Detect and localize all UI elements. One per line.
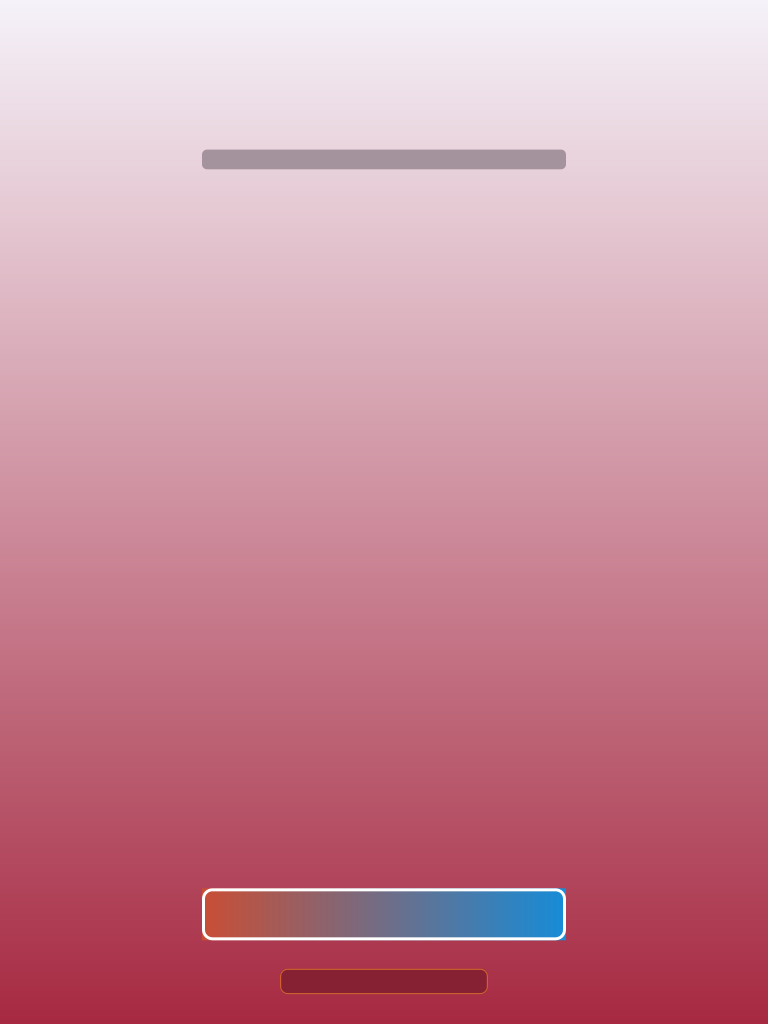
button[interactable]: Secondary action: [280, 969, 488, 994]
button[interactable]: Continue: [202, 888, 566, 940]
